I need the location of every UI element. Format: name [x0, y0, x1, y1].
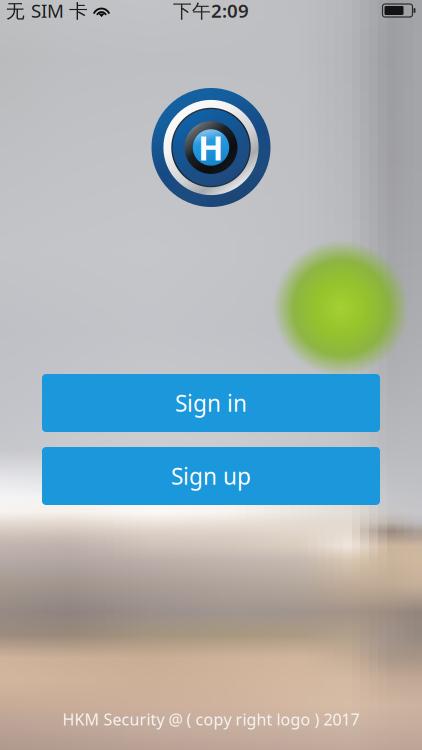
staticText: 下午2:09 [173, 0, 249, 23]
button[interactable]: Sign in [42, 374, 380, 432]
staticText: HKM Security @ ( copy right logo ) 2017 [62, 709, 359, 730]
button[interactable]: Sign up [42, 447, 380, 505]
staticText: Sign in [175, 388, 247, 418]
staticText: H [198, 125, 224, 170]
staticText: 无 SIM 卡 [6, 0, 88, 23]
staticText: Sign up [171, 461, 251, 491]
